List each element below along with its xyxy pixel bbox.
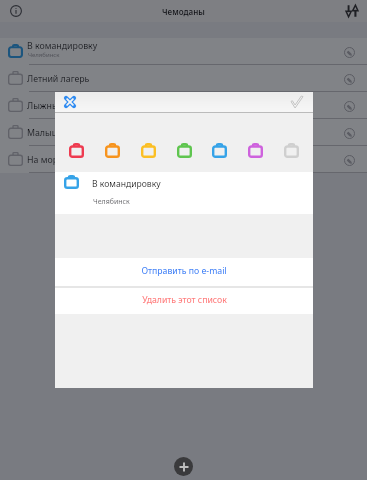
- staticText: Удалить этот список: [142, 294, 227, 306]
- staticText: Летний лагерь: [27, 73, 90, 85]
- button[interactable]: На море: [0, 146, 367, 173]
- staticText: Лыжный поход: [27, 100, 92, 112]
- button[interactable]: [212, 143, 227, 158]
- button[interactable]: [141, 143, 156, 158]
- button[interactable]: Info: [10, 5, 22, 17]
- button[interactable]: Edit: [342, 153, 356, 167]
- button[interactable]: Sort: [346, 5, 358, 17]
- button[interactable]: Удалить этот список: [55, 288, 313, 314]
- staticText: На море: [27, 154, 63, 166]
- staticText: Челябинск: [93, 197, 130, 207]
- staticText: Малыши: [27, 127, 66, 139]
- staticText: Отправить по e-mail: [141, 265, 227, 277]
- button[interactable]: Edit: [342, 45, 356, 59]
- button[interactable]: Edit: [342, 99, 356, 113]
- button[interactable]: [105, 143, 120, 158]
- button[interactable]: В командировку: [55, 172, 313, 214]
- staticText: Челябинск: [28, 51, 60, 59]
- button[interactable]: Edit: [342, 72, 356, 86]
- button[interactable]: Лыжный поход: [0, 92, 367, 119]
- staticText: Чемоданы: [162, 6, 205, 17]
- button[interactable]: [248, 143, 263, 158]
- button[interactable]: [284, 143, 299, 158]
- button[interactable]: [69, 143, 84, 158]
- button[interactable]: Edit: [342, 126, 356, 140]
- button[interactable]: Add list: [174, 457, 193, 476]
- button[interactable]: Done: [291, 96, 303, 108]
- button[interactable]: Летний лагерь: [0, 65, 367, 92]
- button[interactable]: Отправить по e-mail: [55, 258, 313, 286]
- button[interactable]: В командировку: [0, 38, 367, 65]
- staticText: В командировку: [27, 40, 98, 52]
- button[interactable]: Close: [64, 96, 76, 108]
- button[interactable]: Малыши: [0, 119, 367, 146]
- button[interactable]: [177, 143, 192, 158]
- staticText: В командировку: [92, 178, 161, 190]
